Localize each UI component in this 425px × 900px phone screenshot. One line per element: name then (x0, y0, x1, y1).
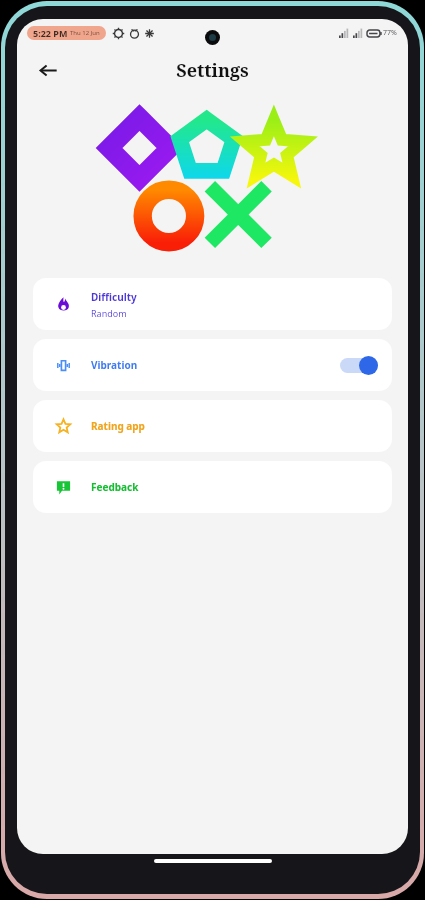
staticText: Vibration (91, 358, 138, 372)
staticText: Feedback (91, 480, 139, 494)
staticText: Thu 12 Jun (70, 29, 100, 37)
button[interactable]: Back (29, 51, 67, 89)
button[interactable]: Rating app (33, 400, 392, 452)
staticText: Rating app (91, 419, 145, 433)
button[interactable]: Vibration (33, 339, 392, 391)
staticText: Difficulty (91, 290, 137, 304)
button[interactable]: Feedback (33, 461, 392, 513)
staticText: Settings (176, 58, 249, 83)
staticText: Random (91, 307, 127, 319)
staticText: 77% (383, 28, 397, 38)
button[interactable]: Vibration toggle (340, 355, 378, 375)
staticText: 5:22 PM (33, 27, 68, 39)
button[interactable]: Difficulty (33, 278, 392, 330)
